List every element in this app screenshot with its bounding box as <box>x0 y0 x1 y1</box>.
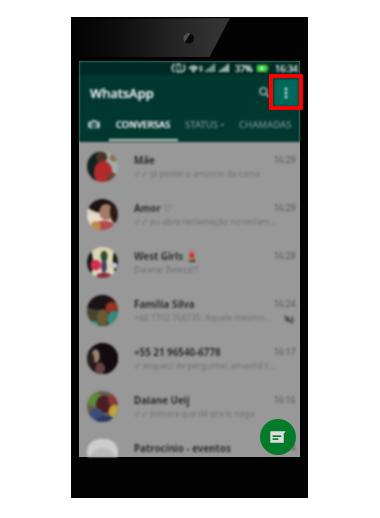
staticText: ✓ esqueci de perguntar, amanhã te... <box>134 360 277 371</box>
staticText: Daiane Ueij <box>134 394 266 407</box>
staticText: Mãe <box>134 154 266 167</box>
button[interactable]: New chat <box>260 419 296 455</box>
button[interactable]: Família Silva <box>79 287 300 335</box>
staticText: +44 7702 768735: Aquele mesmo... <box>134 312 277 323</box>
button[interactable]: CONVERSAS <box>109 109 178 142</box>
staticText: 37% <box>235 62 253 74</box>
staticText: 16:24 <box>274 298 296 309</box>
button[interactable]: More options <box>274 79 298 106</box>
staticText: 16:17 <box>274 346 296 357</box>
staticText: 16:28 <box>274 250 296 261</box>
staticText: ✓✓ eu abro reclamação no reclame a... <box>134 216 277 227</box>
staticText: +55 21 96540-6778 <box>134 346 266 359</box>
button[interactable]: Daiane Ueij <box>79 383 300 431</box>
staticText: CHAMADAS <box>239 118 292 131</box>
staticText: CONVERSAS <box>116 118 171 131</box>
staticText: Daiane: Beleza!!! <box>134 264 277 275</box>
button[interactable]: Amor ♡ <box>79 191 300 239</box>
button[interactable]: Camera <box>79 109 109 142</box>
button[interactable]: STATUS • <box>178 109 231 142</box>
staticText: Família Silva <box>134 298 266 311</box>
staticText <box>134 456 277 467</box>
staticText: STATUS • <box>185 118 225 131</box>
staticText: 16:34 <box>275 62 299 74</box>
button[interactable]: West Girls 💄 <box>79 239 300 287</box>
staticText: 16:14 <box>274 442 296 453</box>
staticText: 16:16 <box>274 394 296 405</box>
button[interactable]: +55 21 96540-6778 <box>79 335 300 383</box>
staticText: WhatsApp <box>90 84 154 102</box>
staticText: 16:29 <box>274 154 296 165</box>
staticText: West Girls 💄 <box>134 250 266 263</box>
button[interactable]: CHAMADAS <box>231 109 300 142</box>
staticText: ✓✓ já postei o anúncio da cama <box>134 168 277 179</box>
staticText: Patrocínio - eventos <box>134 442 266 455</box>
button[interactable]: Search <box>253 81 275 103</box>
button[interactable]: Mãe <box>79 143 300 191</box>
staticText: 16:29 <box>274 202 296 213</box>
staticText: Amor ♡ <box>134 202 266 215</box>
button[interactable]: Patrocínio - eventos <box>79 431 300 457</box>
staticText: ✓✓ tomara que dê pra ir, nega <box>134 408 277 419</box>
